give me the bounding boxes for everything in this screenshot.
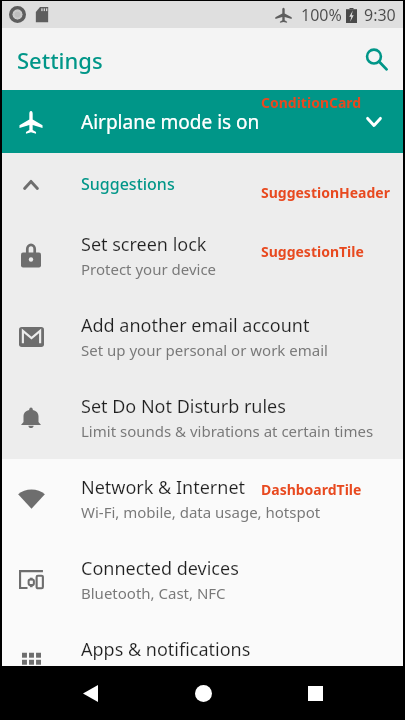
staticText: ConditionCard <box>261 93 362 112</box>
staticText: Set screen lock <box>81 232 207 257</box>
staticText: Set up your personal or work email <box>81 340 328 360</box>
button[interactable]: Suggestions <box>2 153 403 215</box>
button[interactable]: Back <box>66 669 114 717</box>
staticText: 9:30 <box>364 4 396 26</box>
staticText: SuggestionTile <box>261 242 364 261</box>
staticText: Airplane mode is on <box>81 109 260 135</box>
button[interactable]: Search <box>352 35 400 83</box>
button[interactable]: Network & Internet <box>2 458 403 539</box>
staticText: Suggestions <box>81 173 175 195</box>
staticText: Limit sounds & vibrations at certain tim… <box>81 421 374 441</box>
button[interactable]: Set screen lock <box>2 215 403 296</box>
staticText: DashboardTile <box>261 480 362 499</box>
staticText: Connected devices <box>81 556 239 581</box>
button[interactable]: Set Do Not Disturb rules <box>2 377 403 458</box>
staticText: Apps & notifications <box>81 637 251 662</box>
staticText: Permissions, default apps <box>81 664 263 684</box>
staticText: Wi-Fi, mobile, data usage, hotspot <box>81 502 321 522</box>
staticText: Bluetooth, Cast, NFC <box>81 583 226 603</box>
staticText: 100% <box>301 4 342 26</box>
button[interactable]: Connected devices <box>2 539 403 620</box>
staticText: Protect your device <box>81 259 217 279</box>
staticText: Add another email account <box>81 313 310 338</box>
button[interactable]: Apps & notifications <box>2 620 403 701</box>
staticText: Settings <box>17 45 103 75</box>
button[interactable]: Airplane mode is on <box>2 90 403 153</box>
staticText: Set Do Not Disturb rules <box>81 394 286 419</box>
button[interactable]: Home <box>179 669 227 717</box>
staticText: Network & Internet <box>81 475 246 500</box>
staticText: SuggestionHeader <box>261 183 390 202</box>
button[interactable]: Add another email account <box>2 296 403 377</box>
button[interactable]: Recents <box>291 669 339 717</box>
